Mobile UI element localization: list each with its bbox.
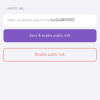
staticText: Save & enable public link [29,34,70,37]
staticText: Disable public link [35,53,65,56]
button[interactable]: Save & enable public link [3,29,96,42]
staticText: https://example.app/invite/ [7,18,50,22]
staticText: fuu0oqMfI3I6ID [50,18,74,22]
staticText: INVITE URL [7,7,24,10]
button[interactable]: Disable public link [3,48,96,61]
